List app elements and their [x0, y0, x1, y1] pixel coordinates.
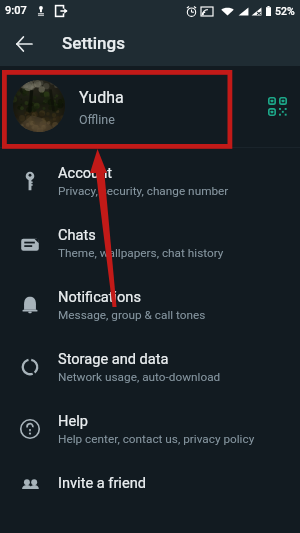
staticText: 52% — [275, 5, 295, 17]
staticText: Help center, contact us, privacy policy — [58, 432, 255, 446]
staticText: Chats — [58, 226, 96, 243]
staticText: Message, group & call tones — [58, 308, 206, 322]
staticText: Offline — [79, 112, 115, 127]
button[interactable]: Invite a friend — [0, 458, 300, 520]
staticText: Yudha — [79, 88, 124, 107]
button[interactable]: Account — [0, 148, 300, 210]
staticText: Help — [58, 412, 88, 429]
button[interactable]: Notifications — [0, 272, 300, 334]
staticText: Storage and data — [58, 350, 169, 367]
staticText: Network usage, auto-download — [58, 370, 221, 384]
button[interactable]: Chats — [0, 210, 300, 272]
button[interactable]: Storage and data — [0, 334, 300, 396]
staticText: Settings — [62, 33, 125, 53]
button[interactable]: Back — [7, 27, 41, 61]
staticText: Privacy, security, change number — [58, 184, 229, 198]
staticText: 9:07 — [5, 4, 27, 17]
staticText: Notifications — [58, 288, 141, 305]
staticText: Theme, wallpapers, chat history — [58, 246, 224, 260]
button[interactable]: QR code — [260, 89, 294, 123]
staticText: Invite a friend — [58, 474, 146, 491]
button[interactable]: Help — [0, 396, 300, 458]
staticText: Account — [58, 164, 112, 181]
button[interactable]: Yudha — [0, 66, 300, 148]
